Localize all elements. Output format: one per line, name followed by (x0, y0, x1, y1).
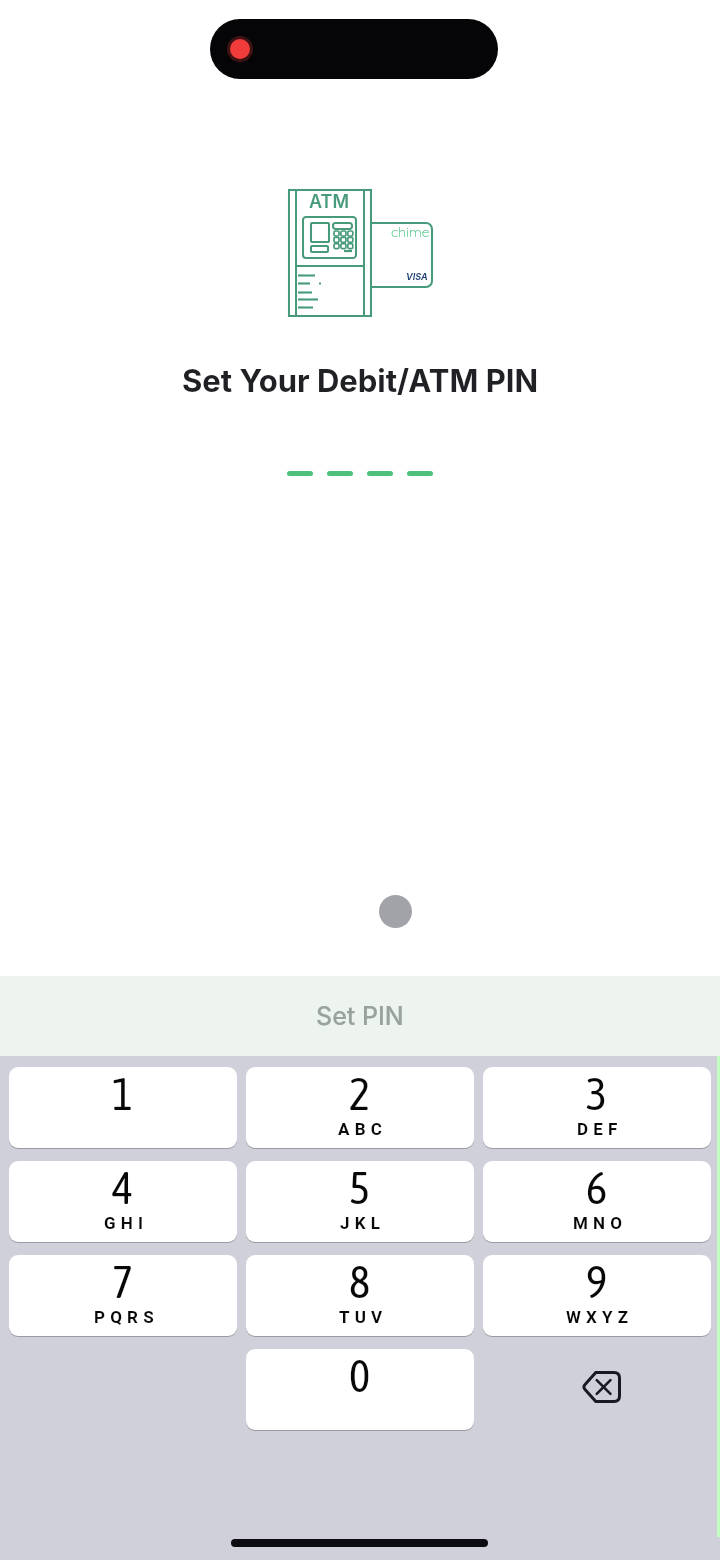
staticText: 1 (112, 1068, 134, 1120)
button[interactable]: 9 (483, 1255, 711, 1336)
button[interactable]: 0 (246, 1349, 474, 1430)
staticText: ABC (338, 1119, 388, 1139)
staticText: PQRS (94, 1307, 159, 1327)
button[interactable]: 6 (483, 1161, 711, 1242)
button[interactable]: 5 (246, 1161, 474, 1242)
staticText: 4 (112, 1162, 134, 1214)
button[interactable]: Backspace (483, 1349, 711, 1430)
staticText: ATM (309, 191, 350, 213)
staticText: chime (391, 223, 430, 241)
staticText: 5 (349, 1162, 371, 1214)
staticText: 8 (349, 1256, 371, 1308)
button[interactable]: 2 (246, 1067, 474, 1148)
staticText: JKL (340, 1213, 386, 1233)
staticText: DEF (577, 1119, 623, 1139)
staticText: MNO (573, 1213, 628, 1233)
button[interactable]: 7 (9, 1255, 237, 1336)
staticText: WXYZ (566, 1307, 634, 1327)
button[interactable]: 4 (9, 1161, 237, 1242)
staticText: TUV (339, 1307, 388, 1327)
staticText: 6 (586, 1162, 608, 1214)
staticText: VISA (406, 271, 428, 282)
staticText: 2 (349, 1068, 371, 1120)
button[interactable]: 8 (246, 1255, 474, 1336)
staticText: GHI (104, 1213, 149, 1233)
staticText: 3 (586, 1068, 608, 1120)
staticText: 9 (586, 1256, 608, 1308)
button[interactable]: 3 (483, 1067, 711, 1148)
staticText: Set Your Debit/ATM PIN (0, 362, 720, 400)
staticText: 7 (112, 1256, 134, 1308)
staticText: Set PIN (316, 1001, 404, 1031)
staticText: 0 (349, 1350, 371, 1402)
button[interactable]: 1 (9, 1067, 237, 1148)
